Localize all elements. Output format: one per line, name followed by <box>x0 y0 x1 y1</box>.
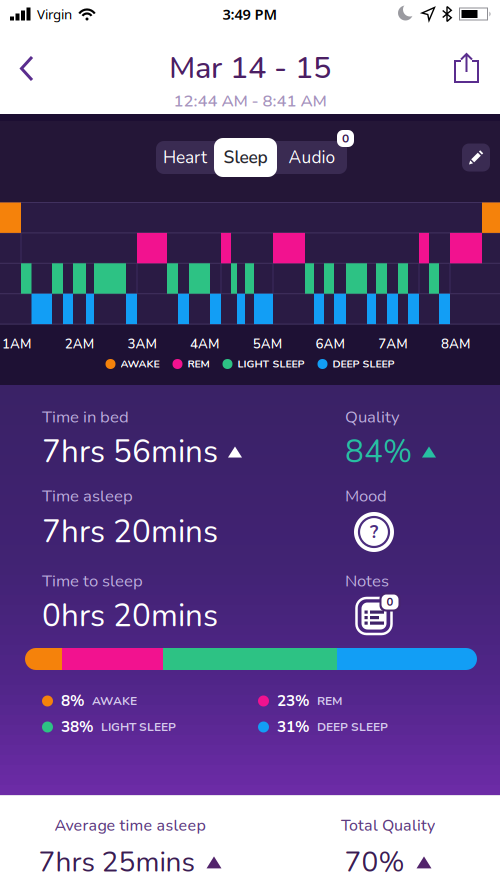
staticText: LIGHT SLEEP <box>237 357 304 371</box>
staticText: 23% <box>277 690 309 711</box>
button[interactable]: Heart <box>156 138 214 177</box>
staticText: 84% <box>345 431 412 473</box>
button[interactable]: Back <box>7 43 51 95</box>
staticText: 7hrs 56mins <box>42 431 218 473</box>
staticText: 8% <box>61 690 84 711</box>
staticText: REM <box>317 693 342 709</box>
staticText: 3AM <box>127 335 156 353</box>
staticText: DEEP SLEEP <box>317 719 388 735</box>
staticText: LIGHT SLEEP <box>101 719 176 735</box>
staticText: AWAKE <box>120 357 159 371</box>
staticText: 12:44 AM - 8:41 AM <box>173 90 326 112</box>
staticText: 0hrs 20mins <box>42 595 218 637</box>
staticText: 6AM <box>315 335 344 353</box>
staticText: 38% <box>61 716 93 737</box>
staticText: Mar 14 - 15 <box>169 47 331 89</box>
button[interactable]: Share <box>445 45 489 91</box>
staticText: Time in bed <box>42 406 129 428</box>
staticText: Heart <box>163 146 207 169</box>
button[interactable]: Edit <box>462 143 490 171</box>
staticText: REM <box>187 357 209 371</box>
staticText: Virgin <box>37 5 72 23</box>
staticText: 3:49 PM <box>222 4 277 24</box>
staticText: 7hrs 20mins <box>42 511 218 553</box>
staticText: 70% <box>344 843 404 881</box>
staticText: Audio <box>288 146 335 169</box>
staticText: Total Quality <box>341 814 435 836</box>
staticText: 7hrs 25mins <box>38 843 194 881</box>
staticText: ? <box>370 520 378 544</box>
staticText: Mood <box>345 485 387 507</box>
staticText: DEEP SLEEP <box>332 357 394 371</box>
button[interactable]: Sleep <box>214 138 277 177</box>
staticText: Average time asleep <box>54 814 205 836</box>
staticText: 0 <box>342 130 349 147</box>
staticText: 7AM <box>378 335 407 353</box>
button[interactable]: Mood <box>354 512 394 552</box>
staticText: 31% <box>277 716 309 737</box>
staticText: Quality <box>345 406 400 428</box>
staticText: 8AM <box>441 335 470 353</box>
staticText: Sleep <box>223 146 267 169</box>
staticText: Time to sleep <box>42 570 143 592</box>
button[interactable]: Audio <box>277 138 347 177</box>
staticText: 0 <box>386 594 393 610</box>
staticText: Notes <box>345 570 389 592</box>
staticText: Time asleep <box>42 485 133 507</box>
button[interactable]: Notes <box>354 597 394 635</box>
staticText: 1AM <box>2 335 31 353</box>
staticText: AWAKE <box>92 693 137 709</box>
staticText: 5AM <box>253 335 282 353</box>
staticText: 4AM <box>190 335 219 353</box>
staticText: 2AM <box>65 335 94 353</box>
